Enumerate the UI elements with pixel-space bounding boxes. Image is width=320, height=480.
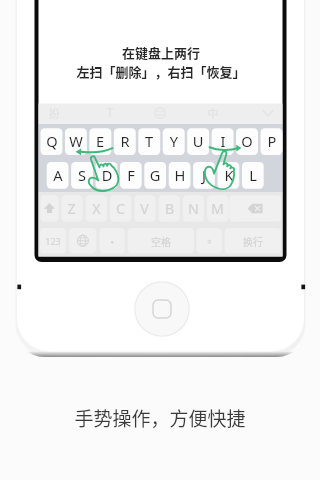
staticText: V bbox=[134, 199, 155, 220]
staticText: H bbox=[169, 165, 191, 187]
staticText: T bbox=[138, 131, 160, 153]
staticText: X bbox=[86, 199, 107, 220]
staticText: Y bbox=[163, 131, 185, 153]
staticText: 手势操作，方便快捷 bbox=[0, 404, 320, 434]
staticText: L bbox=[242, 165, 264, 187]
staticText: R bbox=[114, 131, 136, 153]
staticText: G bbox=[144, 165, 166, 187]
staticText: 123 bbox=[40, 235, 66, 249]
staticText: W bbox=[65, 131, 87, 153]
staticText: I bbox=[212, 131, 234, 153]
staticText: O bbox=[236, 131, 258, 153]
staticText: J bbox=[193, 165, 215, 187]
staticText: 换行 bbox=[225, 234, 281, 249]
staticText: N bbox=[183, 199, 204, 220]
staticText: Q bbox=[41, 131, 63, 153]
staticText: M bbox=[207, 199, 228, 220]
staticText: 在键盘上两行 左扫「删除」，右扫「恢复」 bbox=[39, 43, 283, 85]
staticText: A bbox=[47, 165, 69, 187]
staticText: K bbox=[218, 165, 240, 187]
staticText: E bbox=[89, 131, 111, 153]
staticText: D bbox=[96, 165, 118, 187]
staticText: F bbox=[120, 165, 142, 187]
staticText: 空格 bbox=[128, 234, 194, 249]
staticText: B bbox=[159, 199, 180, 220]
staticText: C bbox=[110, 199, 131, 220]
staticText: U bbox=[187, 131, 209, 153]
staticText: S bbox=[71, 165, 93, 187]
staticText: P bbox=[261, 131, 283, 153]
staticText: Z bbox=[61, 199, 82, 220]
